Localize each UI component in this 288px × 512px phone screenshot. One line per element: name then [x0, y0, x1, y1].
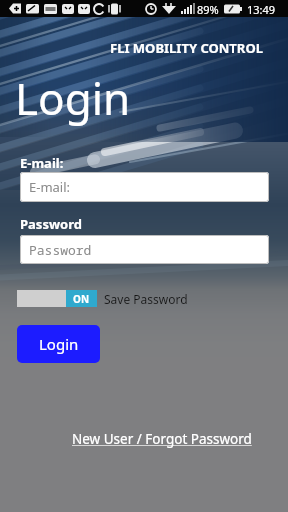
- staticText: Save Password: [104, 291, 188, 307]
- staticText: Password: [29, 241, 92, 259]
- staticText: E-mail:: [29, 178, 71, 196]
- staticText: Login: [39, 334, 79, 354]
- staticText: ON: [73, 292, 90, 306]
- button[interactable]: New User / Forgot Password: [72, 430, 252, 448]
- staticText: 13:49: [247, 2, 276, 17]
- button[interactable]: ON: [17, 290, 97, 307]
- staticText: Login: [15, 68, 131, 128]
- staticText: FLI MOBILITY CONTROL: [110, 39, 263, 57]
- staticText: Password: [20, 215, 82, 233]
- staticText: E-mail:: [20, 154, 64, 172]
- button[interactable]: Password: [20, 235, 269, 264]
- button[interactable]: Login: [17, 325, 100, 363]
- button[interactable]: E-mail:: [20, 172, 269, 202]
- staticText: 89%: [197, 2, 219, 17]
